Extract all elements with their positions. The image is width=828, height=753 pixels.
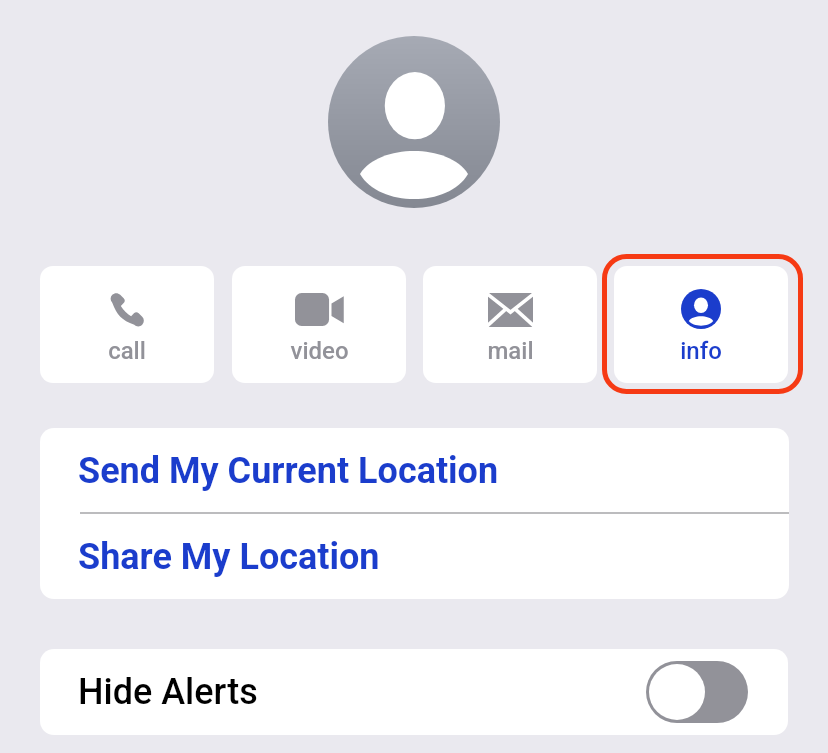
button[interactable]: Hide Alerts toggle, off	[646, 661, 748, 723]
staticText: call	[108, 337, 146, 365]
staticText: info	[680, 337, 722, 365]
staticText: mail	[487, 337, 534, 365]
staticText: Hide Alerts	[78, 671, 258, 713]
button[interactable]: Contact photo	[328, 36, 500, 208]
button[interactable]: info	[614, 266, 788, 383]
staticText: Share My Location	[78, 536, 380, 578]
staticText: Send My Current Location	[78, 450, 499, 492]
button[interactable]: Send My Current Location	[40, 428, 789, 513]
button[interactable]: Share My Location	[40, 514, 789, 599]
button[interactable]: Hide Alerts	[40, 649, 788, 735]
button[interactable]: call	[40, 266, 214, 383]
button[interactable]: video	[232, 266, 406, 383]
button[interactable]: mail	[423, 266, 597, 383]
staticText: video	[290, 337, 349, 365]
